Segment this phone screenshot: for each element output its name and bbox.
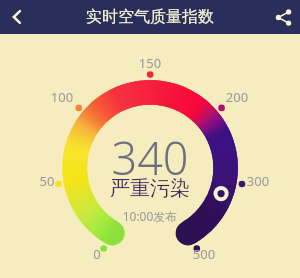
staticText: 340 [0,127,300,188]
staticText: 500 [189,245,219,261]
staticText: 50 [32,172,62,188]
staticText: 150 [135,54,165,70]
staticText: 10:00发布 [0,208,300,224]
staticText: 严重污染 [0,176,300,201]
staticText: 0 [82,245,112,261]
staticText: 200 [222,88,252,104]
button[interactable]: Share [266,0,300,34]
button[interactable]: Back [0,0,34,34]
staticText: 实时空气质量指数 [86,7,214,27]
staticText: 300 [243,172,273,188]
staticText: 100 [47,88,77,104]
